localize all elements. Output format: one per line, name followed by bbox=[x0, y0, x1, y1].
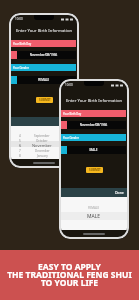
staticText: 1964 bbox=[64, 134, 71, 138]
staticText: October bbox=[36, 139, 48, 143]
staticText: Your Birth Day bbox=[13, 42, 32, 46]
staticText: January bbox=[37, 154, 48, 158]
staticText: Done bbox=[65, 119, 74, 124]
staticText: Enter Your Birth Information bbox=[11, 28, 77, 34]
staticText: 8 bbox=[19, 154, 21, 158]
staticText: 1967 bbox=[64, 149, 71, 153]
staticText: November/08/1966 bbox=[67, 123, 120, 127]
staticText: 5 bbox=[19, 139, 21, 143]
staticText: SUBMIT bbox=[89, 168, 101, 172]
button[interactable]: November/08/1966 bbox=[61, 121, 126, 129]
staticText: Done bbox=[115, 190, 124, 195]
staticText: FEMALE bbox=[17, 78, 70, 82]
staticText: Enter Your Birth Information bbox=[61, 98, 127, 104]
staticText: 7 bbox=[19, 149, 21, 153]
staticText: 10:00 bbox=[65, 83, 73, 87]
button[interactable]: MALE bbox=[61, 146, 126, 154]
staticText: 1965 bbox=[64, 139, 71, 143]
staticText: September bbox=[34, 134, 50, 138]
staticText: November/08/1966 bbox=[17, 53, 70, 57]
staticText: Your Birth Day bbox=[63, 112, 82, 116]
button[interactable]: Your Gender bbox=[63, 134, 124, 141]
staticText: 10:00 bbox=[15, 17, 23, 21]
staticText: 6 bbox=[19, 143, 22, 148]
button[interactable]: Your Birth Day bbox=[13, 40, 74, 47]
button[interactable]: Your Birth Day bbox=[63, 110, 124, 117]
staticText: MALE bbox=[67, 148, 120, 152]
button[interactable]: Done bbox=[64, 188, 124, 197]
button[interactable]: SUBMIT bbox=[36, 97, 53, 103]
button[interactable]: FEMALE bbox=[11, 76, 76, 84]
button[interactable]: SUBMIT bbox=[86, 167, 103, 173]
staticText: 4 bbox=[19, 134, 21, 138]
button[interactable]: Done bbox=[14, 117, 74, 126]
staticText: EASY TO APPLY THE TRADITIONAL FENG SHUI … bbox=[0, 261, 139, 289]
button[interactable]: Your Gender bbox=[13, 64, 74, 71]
staticText: 1966 bbox=[62, 143, 72, 148]
staticText: SUBMIT bbox=[39, 98, 51, 102]
staticText: FEMALE bbox=[88, 206, 100, 210]
staticText: MALE bbox=[87, 213, 101, 220]
staticText: December bbox=[35, 149, 50, 153]
button[interactable]: November/08/1966 bbox=[11, 51, 76, 59]
staticText: Your Gender bbox=[13, 66, 29, 70]
staticText: November bbox=[32, 143, 52, 148]
staticText: Your Gender bbox=[63, 136, 79, 140]
